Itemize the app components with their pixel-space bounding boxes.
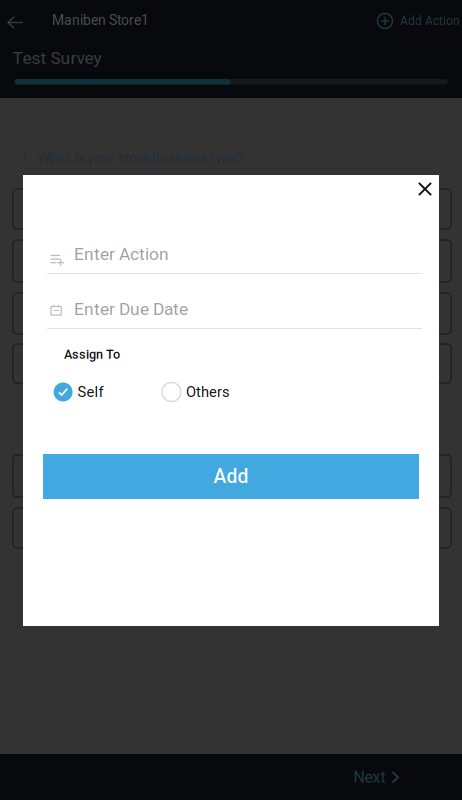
staticText: Enter Action — [74, 244, 169, 264]
staticText: 1 . What is your store business type? — [20, 150, 244, 166]
staticText: Maniben Store1 — [52, 12, 149, 28]
staticText: Others — [186, 383, 230, 401]
button[interactable]: Back — [0, 6, 31, 38]
button[interactable]: Add — [43, 454, 419, 499]
button[interactable]: Close — [409, 173, 441, 205]
button[interactable]: Others — [162, 380, 230, 404]
staticText: Enter Due Date — [74, 299, 188, 319]
button[interactable]: Self — [54, 380, 104, 404]
staticText: Add — [213, 465, 248, 488]
button[interactable]: Add Action — [372, 8, 462, 34]
staticText: Self — [78, 383, 104, 401]
button[interactable]: Next — [347, 762, 405, 793]
staticText: Test Survey — [12, 48, 101, 68]
staticText: Assign To — [64, 347, 120, 362]
staticText: Next — [353, 768, 385, 787]
staticText: Add Action — [400, 14, 460, 28]
